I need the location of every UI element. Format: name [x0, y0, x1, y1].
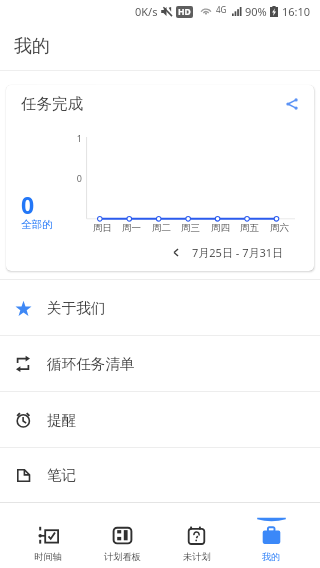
- staticText: 时间轴: [34, 551, 62, 563]
- button[interactable]: 计划看板: [85, 503, 159, 568]
- staticText: 1: [64, 132, 82, 144]
- staticText: 周六: [264, 222, 295, 234]
- button[interactable]: 关于我们: [0, 280, 320, 335]
- staticText: 周三: [175, 222, 206, 234]
- staticText: 全部的: [21, 218, 53, 231]
- staticText: 7月25日 - 7月31日: [192, 245, 284, 260]
- button[interactable]: Share: [277, 89, 307, 119]
- staticText: 0: [64, 172, 82, 184]
- staticText: 我的: [262, 551, 281, 563]
- staticText: 关于我们: [47, 299, 106, 317]
- staticText: 16:10: [282, 4, 311, 19]
- staticText: 提醒: [47, 411, 77, 429]
- staticText: 周日: [87, 222, 118, 234]
- button[interactable]: 提醒: [0, 392, 320, 447]
- button[interactable]: 我的: [234, 503, 309, 568]
- staticText: 周一: [116, 222, 147, 234]
- staticText: 未计划: [183, 551, 211, 563]
- staticText: 循环任务清单: [47, 355, 135, 373]
- staticText: 笔记: [47, 466, 77, 484]
- staticText: 计划看板: [104, 551, 141, 563]
- staticText: 任务完成: [21, 94, 83, 114]
- staticText: 90%: [245, 4, 267, 19]
- button[interactable]: 笔记: [0, 448, 320, 502]
- button[interactable]: 未计划: [159, 503, 234, 568]
- staticText: 4G: [216, 4, 227, 15]
- staticText: 我的: [14, 35, 50, 58]
- staticText: 0: [21, 189, 35, 220]
- staticText: HD: [178, 6, 191, 18]
- staticText: 0K/s: [135, 4, 158, 19]
- button[interactable]: 7月25日 - 7月31日: [171, 245, 284, 260]
- button[interactable]: 时间轴: [11, 503, 85, 568]
- staticText: 周五: [234, 222, 265, 234]
- button[interactable]: 循环任务清单: [0, 336, 320, 391]
- staticText: 周二: [146, 222, 177, 234]
- staticText: 周四: [205, 222, 236, 234]
